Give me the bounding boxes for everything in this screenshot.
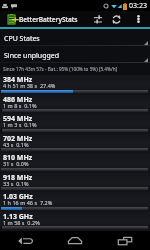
staticText: 1.03 GHz <box>3 192 33 202</box>
button[interactable]: 810 MHz <box>0 153 150 173</box>
staticText: 43 s 0.1% <box>3 141 29 148</box>
staticText: CPU States <box>4 34 40 44</box>
staticText: 1 m 58 s 0.2% <box>3 219 40 226</box>
button[interactable]: 594 MHz <box>0 114 150 134</box>
button[interactable]: 1.03 GHz <box>0 192 150 212</box>
button[interactable]: Home <box>50 231 100 250</box>
button[interactable]: Recent apps <box>100 231 150 250</box>
button[interactable]: 1.13 GHz <box>0 212 150 231</box>
staticText: 1 h 16 m 46 s 7.2% <box>3 199 53 206</box>
button[interactable]: Refresh <box>107 11 126 27</box>
staticText: 1 m 3 s 0.1% <box>3 121 37 128</box>
button[interactable]: 384 MHz <box>0 75 150 95</box>
staticText: 486 MHz <box>3 95 33 105</box>
button[interactable]: 918 MHz <box>0 173 150 192</box>
button[interactable]: More options <box>126 11 150 27</box>
staticText: 1 m 8 s 0.1% <box>3 102 37 109</box>
staticText: Since unplugged <box>4 51 60 61</box>
staticText: 31 s 0.0% <box>3 160 29 167</box>
staticText: 918 MHz <box>3 173 33 183</box>
staticText: 33 s 0.1% <box>3 180 29 187</box>
staticText: 810 MHz <box>3 153 33 163</box>
button[interactable]: CPU States <box>0 29 150 46</box>
staticText: BetterBatteryStats <box>19 15 78 24</box>
button[interactable]: Settings <box>88 11 107 27</box>
button[interactable]: 702 MHz <box>0 134 150 153</box>
staticText: 594 MHz <box>3 114 33 124</box>
staticText: 702 MHz <box>3 134 33 144</box>
staticText: 1.13 GHz <box>3 212 33 222</box>
staticText: 384 MHz <box>3 75 33 85</box>
button[interactable]: 486 MHz <box>0 95 150 114</box>
button[interactable]: Back <box>0 231 50 250</box>
staticText: Since 17h 43m 57s - Bat.: 95% (100% to 5… <box>3 66 118 72</box>
staticText: 03:23 <box>129 1 147 11</box>
button[interactable]: Since unplugged <box>0 46 150 63</box>
staticText: 4 h 51 m 38 s 27.4% <box>3 82 56 89</box>
